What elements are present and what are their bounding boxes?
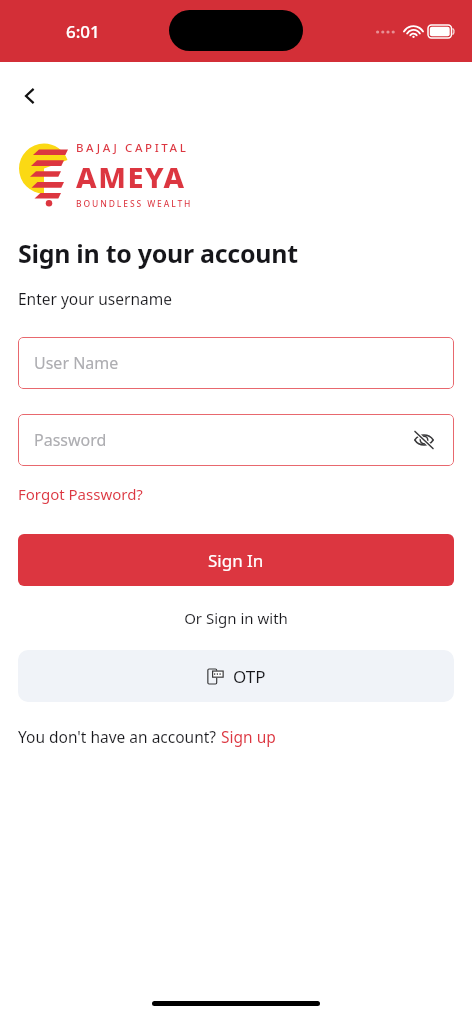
staticText: AMEYA [76, 157, 186, 196]
button[interactable]: User Name [18, 337, 454, 389]
button[interactable]: Back [8, 74, 52, 118]
button[interactable]: Sign In [18, 534, 454, 586]
staticText: Sign In [208, 549, 264, 572]
staticText: Forgot Password? [18, 484, 143, 504]
button[interactable]: Password [18, 414, 454, 466]
button[interactable]: Sign up [221, 726, 276, 747]
button[interactable]: OTP [18, 650, 454, 702]
button[interactable]: Forgot Password? [18, 484, 143, 504]
staticText: Password [34, 429, 107, 451]
staticText: Or Sign in with [0, 608, 472, 628]
staticText: Sign up [221, 726, 276, 747]
staticText: User Name [34, 352, 119, 374]
staticText: BOUNDLESS WEALTH [76, 198, 193, 210]
staticText: Enter your username [18, 288, 172, 309]
staticText: Sign in to your account [18, 236, 298, 270]
staticText: OTP [233, 665, 266, 688]
button[interactable]: Show password [404, 420, 444, 460]
staticText: BAJAJ CAPITAL [76, 140, 189, 156]
staticText: You don't have an account? [18, 726, 221, 747]
staticText: 6:01 [66, 20, 100, 43]
